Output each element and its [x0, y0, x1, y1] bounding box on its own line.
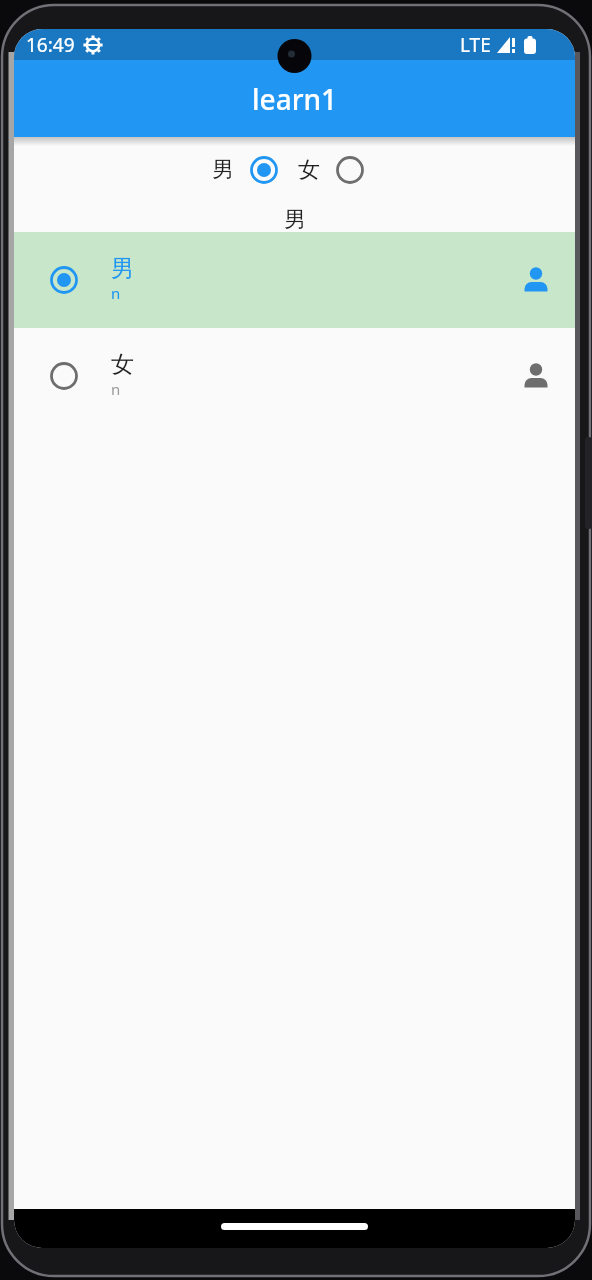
button[interactable]	[250, 156, 278, 184]
button[interactable]	[336, 156, 364, 184]
button[interactable]: 男	[14, 232, 575, 328]
staticText: n	[111, 379, 121, 399]
staticText: 男	[284, 206, 306, 232]
staticText: 女	[298, 156, 320, 184]
staticText: n	[111, 283, 121, 303]
staticText: 男	[212, 156, 234, 184]
button[interactable]: 女	[14, 328, 575, 424]
staticText: LTE	[460, 32, 491, 58]
staticText: learn1	[252, 80, 338, 118]
staticText: 女	[111, 350, 134, 379]
staticText: 男	[111, 254, 134, 283]
staticText: 16:49	[26, 32, 75, 58]
